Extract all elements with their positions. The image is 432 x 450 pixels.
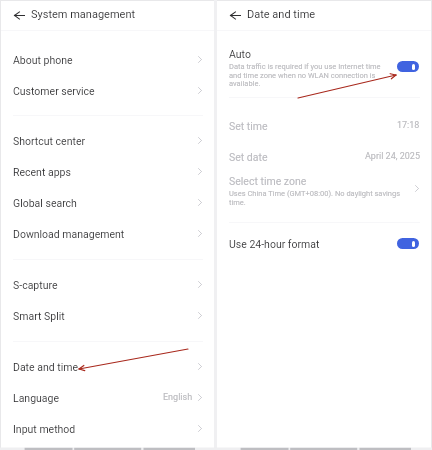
button[interactable]: Language xyxy=(1,382,214,413)
button[interactable]: About phone xyxy=(1,44,214,75)
staticText: English xyxy=(163,392,193,403)
button[interactable]: Set time xyxy=(217,110,431,141)
button[interactable]: Use 24-hour format xyxy=(217,231,431,256)
button[interactable]: Auto xyxy=(217,48,431,87)
staticText: Customer service xyxy=(13,85,95,97)
staticText: System management xyxy=(31,8,136,21)
button[interactable]: Toggle xyxy=(397,61,419,72)
button[interactable]: Shortcut center xyxy=(1,125,214,156)
staticText: Select time zone xyxy=(229,175,307,187)
staticText: Recent apps xyxy=(13,166,71,178)
staticText: Smart Split xyxy=(13,310,65,322)
staticText: Set time xyxy=(229,120,268,132)
staticText: Data traffic is required if you use Inte… xyxy=(229,62,383,87)
staticText: Global search xyxy=(13,197,77,209)
staticText: Download management xyxy=(13,228,125,240)
staticText: Input method xyxy=(13,423,76,435)
button[interactable]: Download management xyxy=(1,218,214,249)
staticText: Language xyxy=(13,392,60,404)
button[interactable]: Toggle xyxy=(397,238,419,249)
staticText: Set date xyxy=(229,151,268,163)
button[interactable]: Smart Split xyxy=(1,300,214,331)
staticText: Use 24-hour format xyxy=(229,238,320,250)
button[interactable]: Back xyxy=(11,7,28,24)
staticText: S-capture xyxy=(13,279,58,291)
button[interactable]: Recent apps xyxy=(1,156,214,187)
staticText: 17:18 xyxy=(397,120,420,131)
staticText: Auto xyxy=(229,48,251,60)
staticText: Date and time xyxy=(247,8,316,21)
staticText: Shortcut center xyxy=(13,135,86,147)
staticText: Uses China Time (GMT+08:00). No daylight… xyxy=(229,189,401,206)
button[interactable]: Select time zone xyxy=(217,175,431,206)
button[interactable]: S-capture xyxy=(1,269,214,300)
button[interactable]: Global search xyxy=(1,187,214,218)
staticText: About phone xyxy=(13,54,73,66)
button[interactable]: Back xyxy=(227,7,244,24)
button[interactable]: Set date xyxy=(217,141,431,172)
button[interactable]: Customer service xyxy=(1,75,214,106)
staticText: Date and time xyxy=(13,361,79,373)
button[interactable]: Date and time xyxy=(1,351,214,382)
button[interactable]: Input method xyxy=(1,413,214,444)
staticText: April 24, 2025 xyxy=(365,151,420,162)
